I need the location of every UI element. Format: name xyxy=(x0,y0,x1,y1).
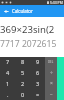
button[interactable]: 3 xyxy=(30,78,45,89)
button[interactable]: 6 xyxy=(30,67,45,78)
button[interactable]: DEL xyxy=(45,57,57,67)
staticText: − xyxy=(50,91,53,98)
button[interactable]: 8 xyxy=(15,57,30,67)
staticText: 3 xyxy=(36,80,40,88)
button[interactable]: 5 xyxy=(15,67,30,78)
staticText: 0 xyxy=(21,91,25,99)
staticText: 8 xyxy=(21,58,25,66)
staticText: 2 xyxy=(21,80,25,88)
staticText: 6 xyxy=(36,69,40,77)
staticText: ÷ xyxy=(50,69,53,76)
button[interactable]: 9 xyxy=(30,57,45,67)
button[interactable]: . xyxy=(0,89,15,100)
staticText: . xyxy=(7,91,9,99)
button[interactable]: × xyxy=(45,78,57,89)
staticText: 7 xyxy=(6,58,10,66)
button[interactable]: = xyxy=(30,89,45,100)
staticText: DEL xyxy=(48,60,54,64)
staticText: 4 xyxy=(6,69,10,77)
staticText: 5 xyxy=(21,69,25,77)
staticText: 1 xyxy=(6,80,10,88)
button[interactable]: − xyxy=(45,89,57,100)
button[interactable]: 1 xyxy=(0,78,15,89)
staticText: 9 xyxy=(36,58,40,66)
button[interactable]: 0 xyxy=(15,89,30,100)
button[interactable]: Navigate up xyxy=(0,5,12,17)
button[interactable]: 4 xyxy=(0,67,15,78)
staticText: 369×23sin(2 xyxy=(0,23,55,36)
staticText: = xyxy=(36,91,40,99)
staticText: × xyxy=(50,80,53,87)
staticText: 7717 2072615 xyxy=(0,38,57,50)
staticText: 5:33 PM xyxy=(50,0,63,5)
button[interactable]: 7 xyxy=(0,57,15,67)
button[interactable]: ÷ xyxy=(45,67,57,78)
button[interactable]: 2 xyxy=(15,78,30,89)
staticText: Calculator xyxy=(12,8,33,14)
